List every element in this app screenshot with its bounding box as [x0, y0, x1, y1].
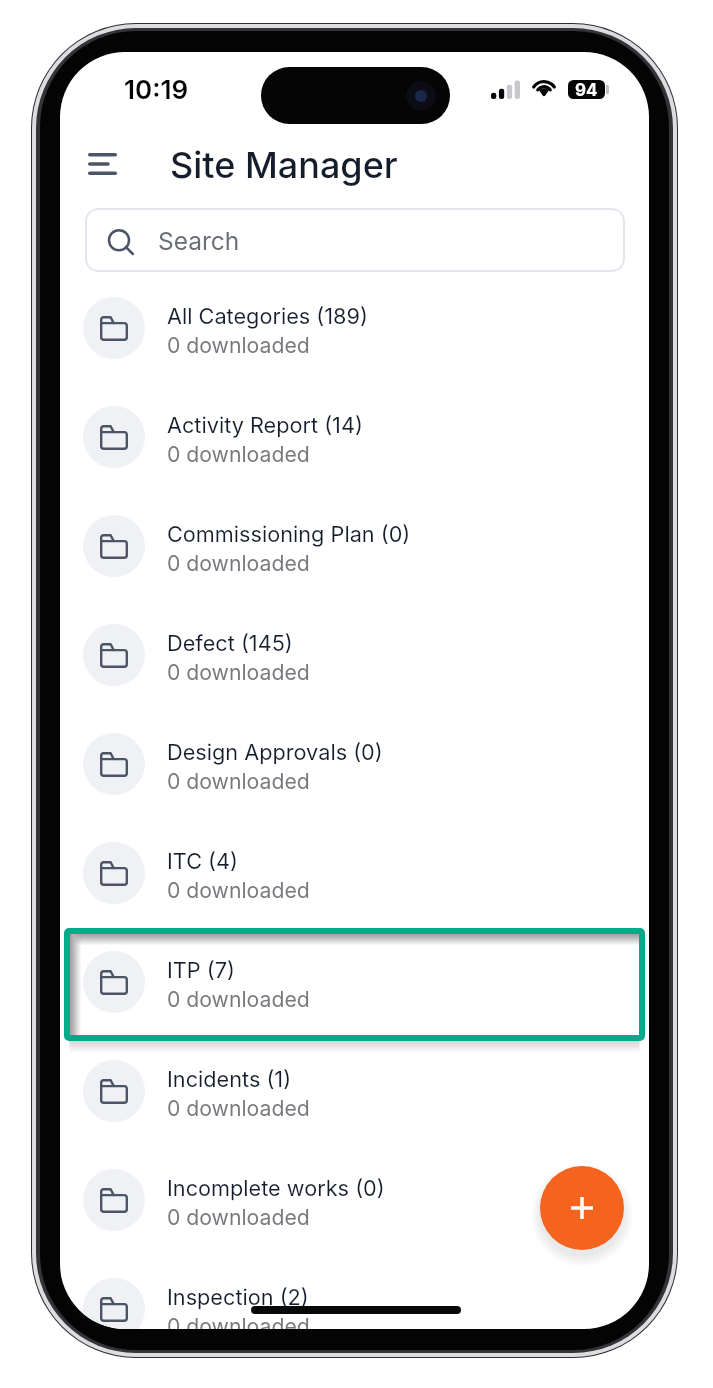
staticText: Defect (145)	[167, 630, 293, 656]
staticText: 10:19	[124, 74, 189, 105]
staticText: Search	[158, 226, 240, 256]
staticText: All Categories (189)	[167, 303, 368, 329]
staticText: Site Manager	[170, 143, 398, 187]
staticText: 0 downloaded	[167, 659, 310, 685]
staticText: 0 downloaded	[167, 1204, 310, 1230]
staticText: Commissioning Plan (0)	[167, 521, 411, 547]
button[interactable]: Design Approvals (0)	[60, 709, 649, 818]
button[interactable]: Add new item	[540, 1166, 624, 1250]
staticText: 0 downloaded	[167, 441, 310, 467]
button[interactable]: Inspection (2)	[60, 1254, 649, 1329]
staticText: 0 downloaded	[167, 877, 310, 903]
staticText: 94	[575, 80, 598, 99]
staticText: ITP (7)	[167, 957, 235, 983]
button[interactable]: Incomplete works (0)	[60, 1145, 649, 1254]
button[interactable]: Search	[85, 208, 625, 272]
staticText: 0 downloaded	[167, 986, 310, 1012]
staticText: 0 downloaded	[167, 1313, 310, 1329]
button[interactable]: Defect (145)	[60, 600, 649, 709]
button[interactable]: Open navigation menu	[76, 138, 128, 190]
button[interactable]: ITC (4)	[60, 818, 649, 927]
button[interactable]: Incidents (1)	[60, 1036, 649, 1145]
staticText: ITC (4)	[167, 848, 238, 874]
staticText: 0 downloaded	[167, 332, 310, 358]
button[interactable]: Commissioning Plan (0)	[60, 491, 649, 600]
staticText: Inspection (2)	[167, 1284, 309, 1310]
button[interactable]: Activity Report (14)	[60, 382, 649, 491]
staticText: Incidents (1)	[167, 1066, 292, 1092]
staticText: Design Approvals (0)	[167, 739, 383, 765]
staticText: 0 downloaded	[167, 768, 310, 794]
button[interactable]: ITP (7)	[60, 927, 649, 1036]
button[interactable]: All Categories (189)	[60, 273, 649, 382]
staticText: Incomplete works (0)	[167, 1175, 385, 1201]
staticText: 0 downloaded	[167, 550, 310, 576]
staticText: 0 downloaded	[167, 1095, 310, 1121]
staticText: Activity Report (14)	[167, 412, 363, 438]
